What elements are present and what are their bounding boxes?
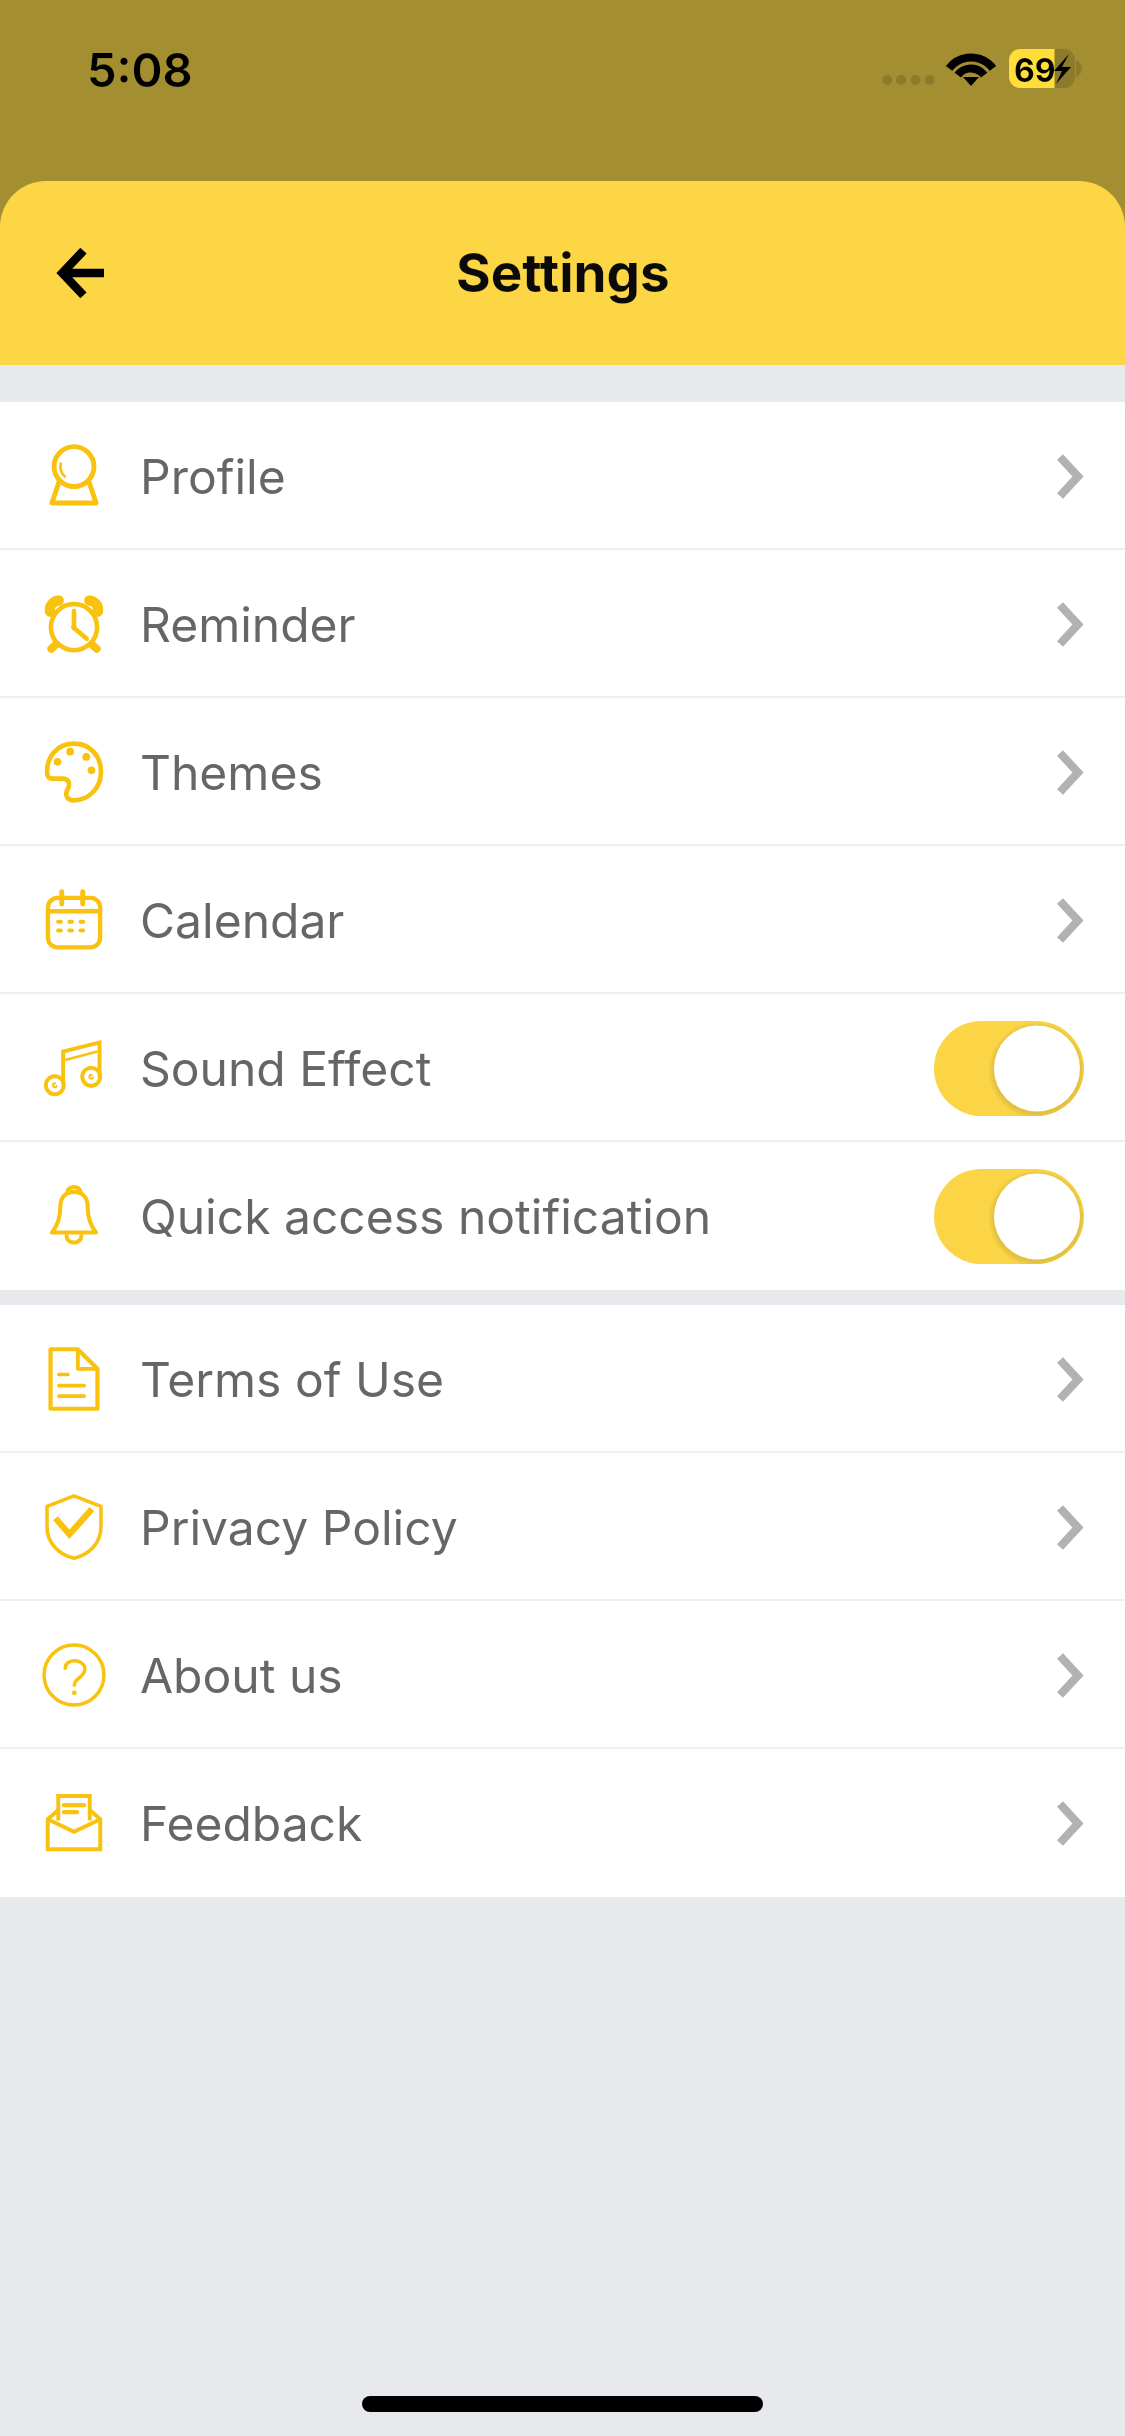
button[interactable]: About us	[0, 1601, 1125, 1749]
button[interactable]: Sound Effect	[0, 994, 1125, 1142]
button[interactable]: Reminder	[0, 550, 1125, 698]
staticText: Sound Effect	[140, 1039, 432, 1097]
staticText: Themes	[140, 743, 323, 801]
staticText: 5:08	[87, 41, 193, 98]
staticText: Calendar	[140, 891, 345, 949]
button[interactable]: Quick access notification	[0, 1142, 1125, 1290]
staticText: Terms of Use	[140, 1350, 445, 1408]
staticText: Feedback	[140, 1794, 363, 1852]
button[interactable]: Profile	[0, 402, 1125, 550]
staticText: Profile	[140, 447, 286, 505]
staticText: About us	[140, 1646, 343, 1704]
staticText: Reminder	[140, 595, 356, 653]
staticText: Privacy Policy	[140, 1498, 458, 1556]
button[interactable]: Privacy Policy	[0, 1453, 1125, 1601]
button[interactable]: Sound Effect, on	[934, 1021, 1084, 1116]
button[interactable]: Calendar	[0, 846, 1125, 994]
button[interactable]: Quick access notification, on	[934, 1169, 1084, 1264]
button[interactable]: Back	[30, 223, 130, 323]
staticText: 69	[1014, 51, 1056, 90]
button[interactable]: Terms of Use	[0, 1305, 1125, 1453]
button[interactable]: Themes	[0, 698, 1125, 846]
staticText: Settings	[456, 241, 670, 305]
button[interactable]: Feedback	[0, 1749, 1125, 1897]
staticText: Quick access notification	[140, 1187, 712, 1245]
